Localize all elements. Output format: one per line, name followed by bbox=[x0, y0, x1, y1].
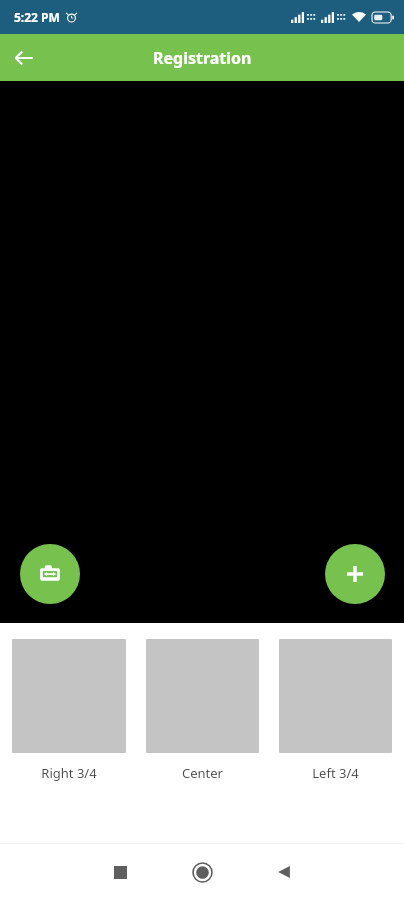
button[interactable]: Back bbox=[0, 34, 48, 81]
button[interactable]: Add bbox=[325, 544, 385, 604]
button[interactable]: Left 3/4 bbox=[279, 639, 392, 782]
button[interactable]: Center bbox=[146, 639, 259, 782]
button[interactable]: Back bbox=[256, 844, 312, 900]
button[interactable]: Switch camera bbox=[20, 544, 80, 604]
staticText: Center bbox=[182, 764, 223, 782]
button[interactable]: Right 3/4 bbox=[12, 639, 126, 782]
button[interactable]: Recent apps bbox=[92, 844, 148, 900]
staticText: 5:22 PM bbox=[14, 9, 60, 25]
button[interactable]: Home bbox=[174, 844, 230, 900]
staticText: Left 3/4 bbox=[312, 764, 359, 782]
staticText: Right 3/4 bbox=[41, 764, 97, 782]
staticText: Registration bbox=[153, 47, 252, 69]
